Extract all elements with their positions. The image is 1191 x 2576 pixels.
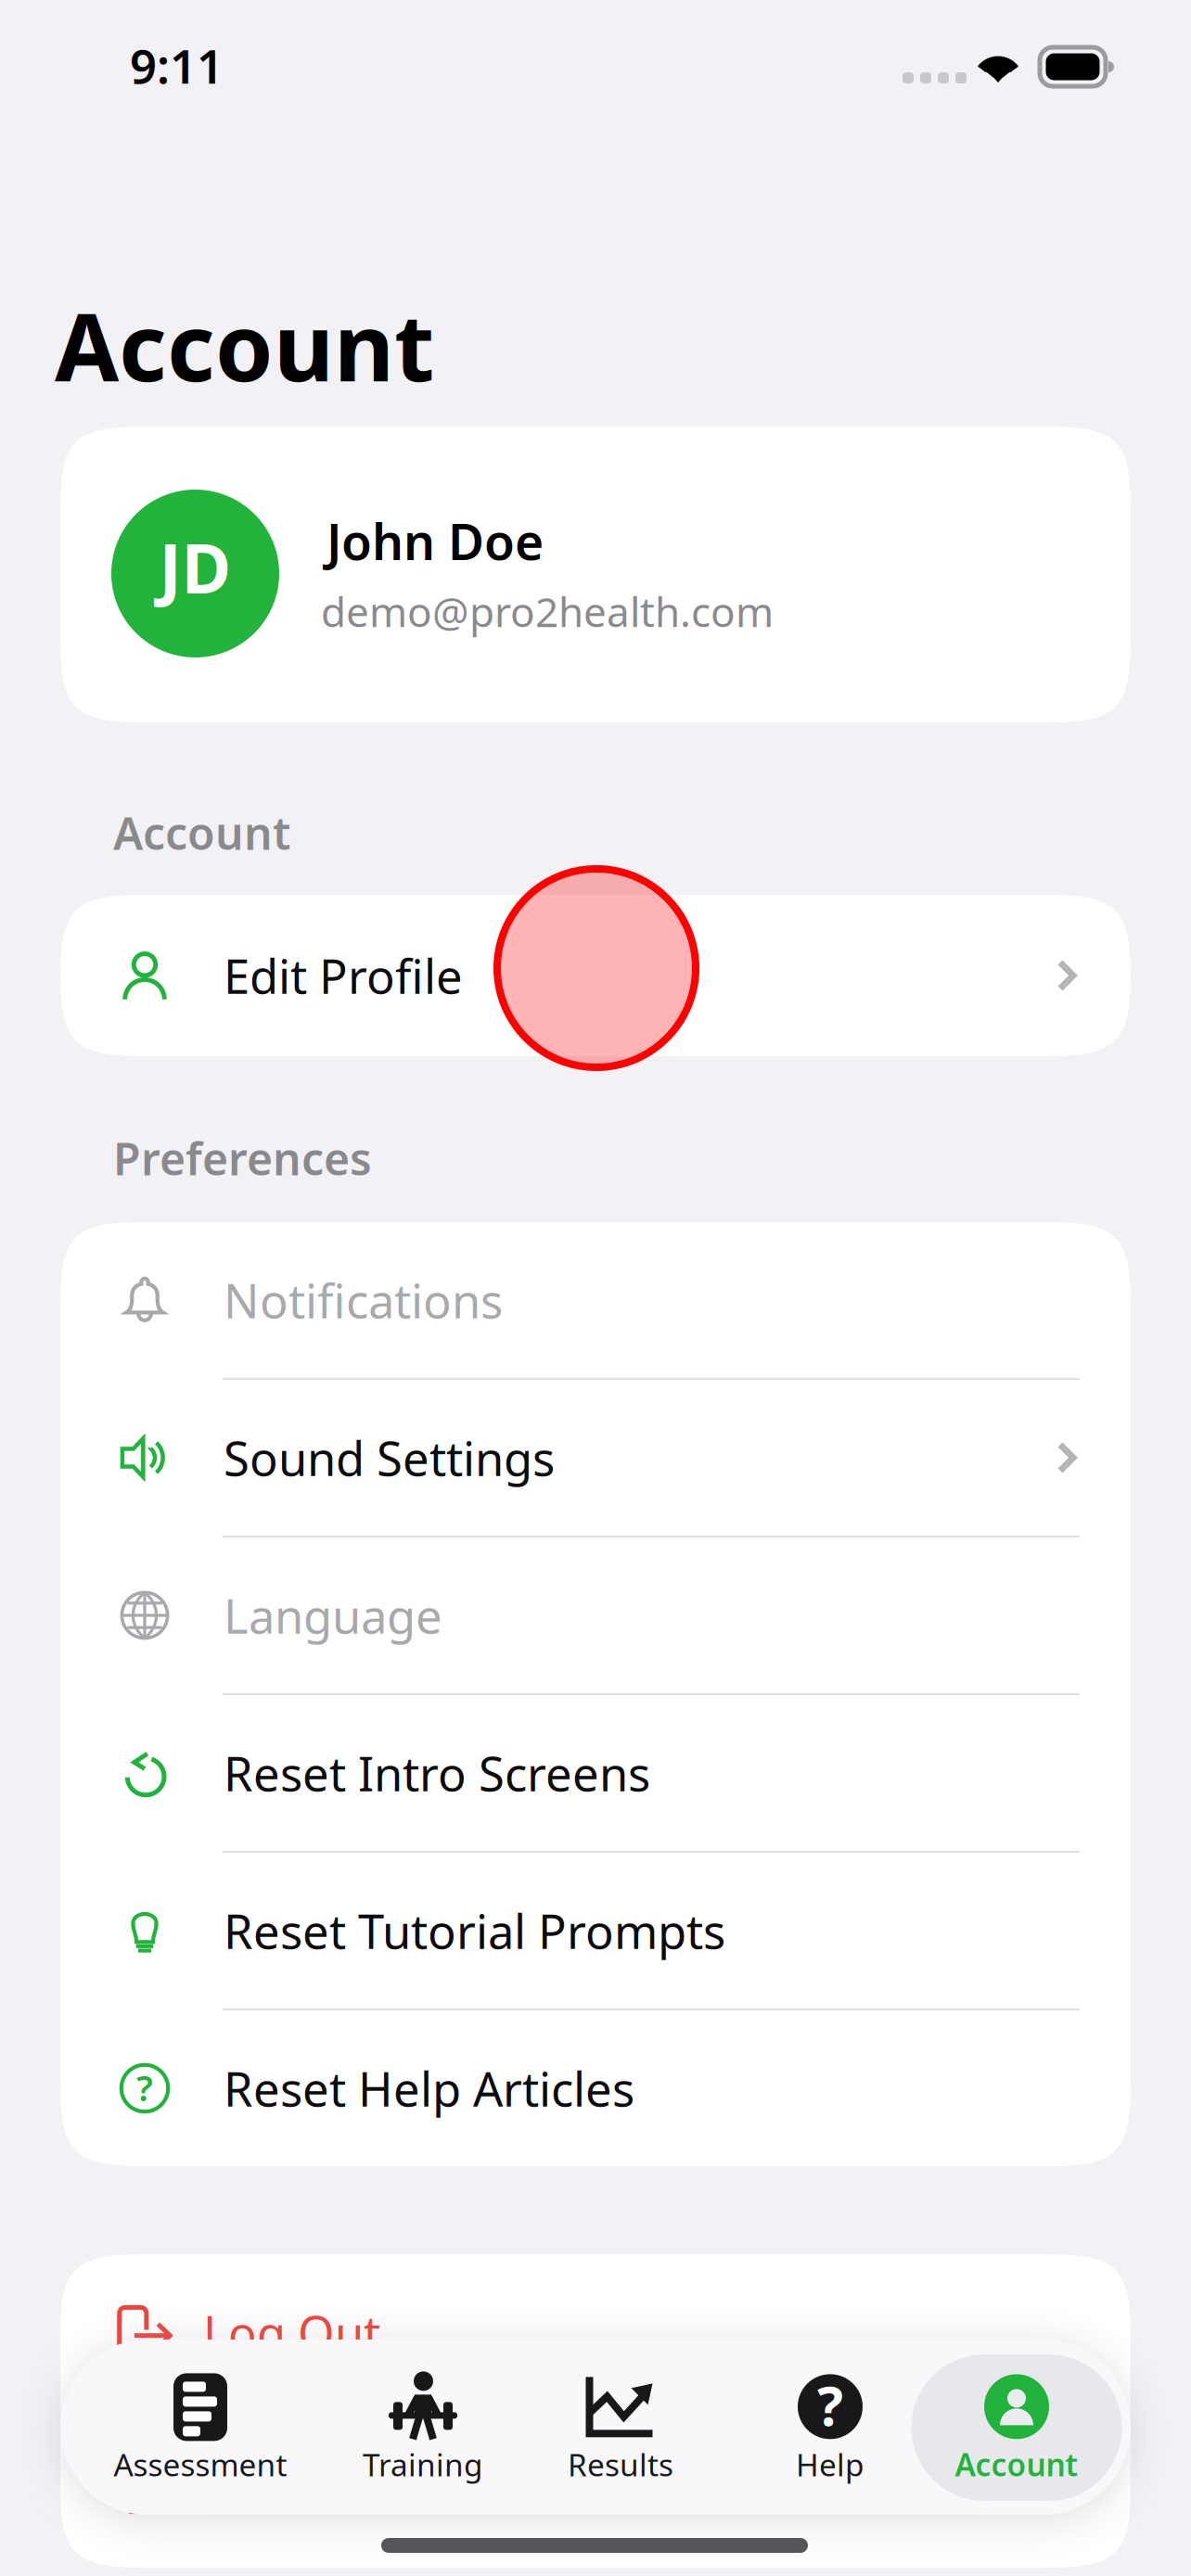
staticText: Delete Account xyxy=(203,2459,536,2521)
button[interactable]: Language xyxy=(60,1537,1131,1693)
button[interactable]: Account xyxy=(911,2354,1122,2501)
button[interactable]: Assessment xyxy=(90,2354,311,2501)
staticText: Sound Settings xyxy=(224,1427,555,1489)
button[interactable]: Results xyxy=(521,2354,720,2501)
button[interactable]: Notifications xyxy=(60,1222,1131,1378)
staticText: Reset Help Articles xyxy=(224,2057,634,2119)
button[interactable]: Log Out xyxy=(60,2254,1131,2410)
staticText: JD xyxy=(159,522,231,612)
button[interactable]: Edit Profile xyxy=(60,895,1131,1056)
button[interactable]: Reset Tutorial Prompts xyxy=(60,1853,1131,2009)
button[interactable]: Training xyxy=(324,2354,522,2501)
button[interactable]: ? xyxy=(731,2354,929,2501)
staticText: Account xyxy=(55,284,434,407)
staticText: ? xyxy=(817,2369,843,2441)
staticText: Reset Tutorial Prompts xyxy=(224,1899,725,1962)
button[interactable]: Delete Account xyxy=(60,2412,1131,2568)
staticText: Edit Profile xyxy=(224,944,463,1007)
staticText: 9:11 xyxy=(130,34,224,97)
staticText: Account xyxy=(113,803,290,862)
staticText: John Doe xyxy=(327,508,544,574)
button[interactable]: Reset Intro Screens xyxy=(60,1695,1131,1851)
staticText: Reset Intro Screens xyxy=(224,1742,650,1804)
staticText: Language xyxy=(224,1584,442,1647)
staticText: Training xyxy=(363,2444,483,2485)
button[interactable]: Sound Settings xyxy=(60,1380,1131,1536)
staticText: Account xyxy=(955,2444,1078,2485)
staticText: Log Out xyxy=(203,2301,380,2363)
staticText: demo@pro2health.com xyxy=(321,584,774,638)
button[interactable]: ? xyxy=(60,2010,1131,2166)
staticText: Assessment xyxy=(114,2444,287,2485)
staticText: ? xyxy=(136,2063,153,2111)
staticText: Preferences xyxy=(113,1129,372,1188)
staticText: Notifications xyxy=(224,1269,503,1331)
staticText: Help xyxy=(796,2444,864,2485)
staticText: Results xyxy=(568,2444,673,2485)
